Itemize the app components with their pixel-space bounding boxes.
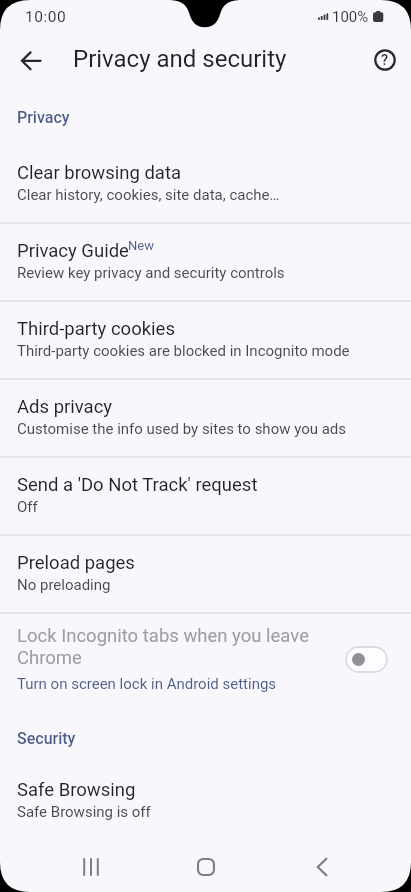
button[interactable]: ? — [361, 36, 409, 84]
staticText: Off — [17, 498, 38, 516]
staticText: Review key privacy and security controls — [17, 264, 285, 282]
button[interactable] — [298, 843, 346, 891]
button[interactable]: Third-party cookies — [0, 301, 411, 379]
button[interactable] — [6, 37, 54, 85]
button[interactable]: Clear browsing data — [0, 145, 411, 223]
staticText: Privacy and security — [73, 45, 287, 73]
staticText: Turn on screen lock in Android settings — [17, 675, 277, 693]
staticText: Clear history, cookies, site data, cache… — [17, 186, 280, 204]
button[interactable] — [182, 843, 230, 891]
staticText: 100% — [332, 8, 369, 26]
staticText: Send a 'Do Not Track' request — [17, 474, 258, 496]
staticText: Safe Browsing is off — [17, 803, 151, 821]
staticText: Third-party cookies — [17, 318, 175, 340]
button[interactable]: Safe Browsing — [0, 762, 411, 840]
staticText: Preload pages — [17, 552, 135, 574]
button[interactable]: Privacy Guide — [0, 223, 411, 301]
staticText: Customise the info used by sites to show… — [17, 420, 347, 438]
button[interactable]: Ads privacy — [0, 379, 411, 457]
staticText: Third-party cookies are blocked in Incog… — [17, 342, 350, 360]
button[interactable]: Lock Incognito tabs when you leave Chrom… — [0, 613, 411, 718]
staticText: Privacy Guide — [17, 240, 129, 262]
staticText: Safe Browsing — [17, 779, 136, 801]
staticText: New — [128, 238, 154, 253]
staticText: ? — [381, 52, 389, 69]
button[interactable]: Send a 'Do Not Track' request — [0, 457, 411, 535]
staticText: Lock Incognito tabs when you leave Chrom… — [17, 625, 327, 669]
button[interactable] — [67, 843, 115, 891]
staticText: Clear browsing data — [17, 162, 182, 184]
staticText: Ads privacy — [17, 396, 113, 418]
staticText: No preloading — [17, 576, 111, 594]
staticText: Security — [17, 729, 76, 748]
staticText: Privacy — [17, 108, 70, 127]
staticText: 10:00 — [25, 8, 67, 26]
button[interactable]: Preload pages — [0, 535, 411, 613]
